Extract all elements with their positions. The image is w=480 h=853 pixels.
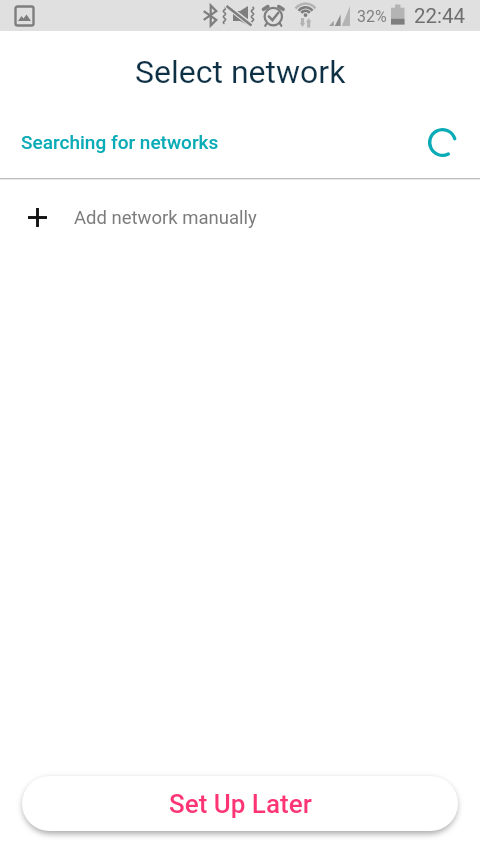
staticText: Searching for networks xyxy=(21,131,219,153)
staticText: Set Up Later xyxy=(169,789,312,819)
staticText: Select network xyxy=(135,53,346,91)
staticText: 32% xyxy=(357,7,387,26)
button[interactable]: Add network manually xyxy=(0,181,480,255)
staticText: Add network manually xyxy=(74,207,257,229)
button[interactable]: Searching for networks xyxy=(0,111,480,172)
button[interactable]: Set Up Later xyxy=(22,776,458,831)
staticText: 22:44 xyxy=(414,4,466,28)
other: Searching xyxy=(421,121,463,163)
